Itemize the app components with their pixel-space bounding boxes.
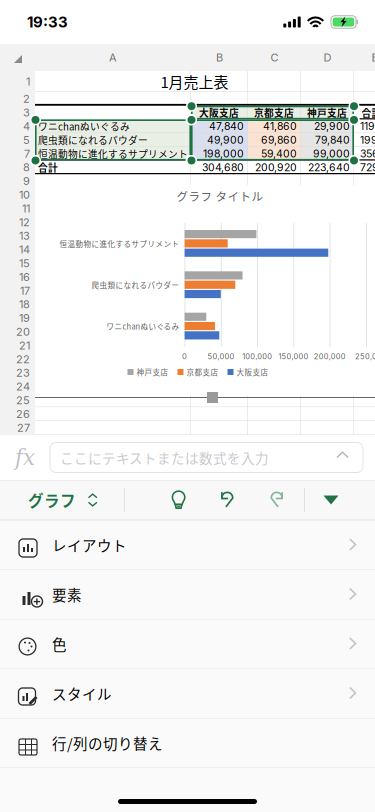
staticText: 29,900 — [314, 120, 350, 133]
staticText: 304,680 — [202, 161, 244, 174]
staticText: 16 — [19, 270, 30, 284]
staticText: 49,900 — [207, 134, 244, 146]
staticText: 47,840 — [209, 120, 244, 133]
staticText: 1 — [26, 75, 30, 88]
button[interactable]: 行/列の切り替え — [0, 718, 375, 768]
staticText: グラフ — [28, 489, 76, 511]
button[interactable]: 色 — [0, 619, 375, 669]
staticText: 198,000 — [203, 147, 244, 160]
staticText: 12 — [19, 215, 30, 229]
staticText: 79,840 — [315, 134, 350, 146]
staticText: A — [109, 51, 117, 64]
staticText: グラフ タイトル — [176, 188, 263, 204]
staticText: 行/列の切り替え — [52, 732, 163, 753]
staticText: 色 — [52, 633, 67, 654]
staticText: 恒温動物に進化するサプリメント — [60, 238, 180, 249]
staticText: 59,400 — [261, 147, 297, 160]
staticText: 15 — [19, 257, 30, 270]
staticText: E — [371, 51, 375, 64]
staticText: 神戸支店 — [136, 367, 168, 377]
staticText: 合計 — [38, 160, 58, 174]
button[interactable]: Ideas — [157, 480, 201, 520]
staticText: 69,860 — [261, 134, 297, 146]
staticText: 356 — [360, 147, 375, 160]
staticText: 24 — [16, 380, 30, 393]
staticText: 25 — [16, 394, 30, 407]
staticText: 223,640 — [308, 161, 350, 174]
staticText: 50,000 — [207, 352, 234, 361]
staticText: 5 — [23, 133, 30, 147]
staticText: 26 — [16, 407, 30, 421]
staticText: 要素 — [52, 584, 82, 605]
staticText: ここにテキストまたは数式を入力 — [60, 448, 269, 467]
staticText: 7 — [24, 147, 30, 160]
staticText: 合計 — [361, 105, 375, 119]
staticText: 22 — [16, 352, 30, 366]
staticText: 10 — [19, 188, 30, 201]
staticText: 京都支店 — [186, 367, 218, 377]
button[interactable]: Undo — [206, 480, 250, 520]
staticText: 大阪支店 — [199, 105, 239, 119]
staticText: 19 — [19, 311, 30, 325]
staticText: 9 — [23, 174, 30, 188]
staticText: 119 — [360, 120, 375, 133]
staticText: 41,860 — [263, 120, 297, 133]
staticText: 199 — [360, 134, 375, 146]
staticText: 14 — [19, 243, 30, 256]
staticText: 23 — [16, 366, 30, 379]
staticText: 18 — [19, 298, 30, 311]
staticText: 11 — [22, 202, 30, 215]
staticText: 2 — [23, 92, 30, 105]
button[interactable]: グラフ — [18, 480, 108, 520]
staticText: 729 — [360, 161, 375, 174]
staticText: 恒温動物に進化するサプリメント — [38, 147, 188, 161]
staticText: 99,000 — [313, 147, 350, 160]
button[interactable]: 要素 — [0, 570, 375, 619]
staticText: 19:33 — [27, 13, 68, 31]
button[interactable]: スタイル — [0, 669, 375, 718]
staticText: 150,000 — [278, 352, 308, 361]
staticText: 爬虫類になれるパウダー — [92, 280, 180, 290]
button[interactable]: Collapse ribbon — [309, 480, 353, 520]
staticText: 27 — [17, 421, 30, 434]
staticText: 17 — [20, 284, 30, 297]
staticText: 爬虫類になれるパウダー — [38, 133, 148, 147]
button[interactable]: ここにテキストまたは数式を入力 — [50, 442, 363, 472]
staticText: 3 — [23, 106, 30, 119]
staticText: 京都支店 — [254, 105, 294, 119]
staticText: 4 — [23, 120, 30, 133]
staticText: 1月売上表 — [160, 71, 228, 92]
staticText: 大阪支店 — [236, 367, 268, 377]
staticText: スタイル — [52, 683, 112, 704]
staticText: ワニchanぬいぐるみ — [38, 119, 130, 133]
staticText: B — [216, 51, 223, 64]
staticText: 200,000 — [314, 352, 346, 361]
staticText: 神戸支店 — [307, 105, 347, 119]
staticText: レイアウト — [52, 534, 127, 555]
staticText: 100,000 — [242, 352, 272, 361]
staticText: 8 — [23, 161, 30, 174]
button[interactable]: レイアウト — [0, 520, 375, 570]
staticText: 13 — [19, 229, 30, 242]
button[interactable]: Redo — [254, 480, 298, 520]
staticText: fx — [15, 445, 35, 470]
staticText: C — [270, 51, 278, 64]
staticText: ワニchanぬいぐるみ — [107, 321, 180, 332]
staticText: 250,0 — [355, 352, 375, 361]
staticText: D — [323, 51, 331, 64]
staticText: 20 — [16, 325, 30, 338]
staticText: 21 — [19, 339, 30, 352]
staticText: 0 — [182, 352, 187, 361]
staticText: 200,920 — [255, 161, 297, 174]
